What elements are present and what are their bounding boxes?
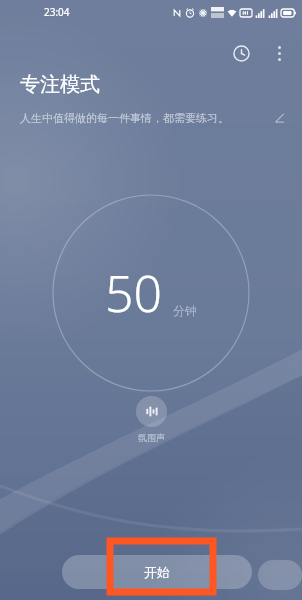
staticText: 23:04 [44, 5, 70, 19]
staticText: 50 [105, 259, 163, 327]
staticText: 专注模式 [20, 72, 100, 97]
button[interactable]: 开始 [62, 555, 252, 589]
staticText: 分钟 [173, 303, 197, 318]
button[interactable]: 50 [52, 194, 250, 392]
button[interactable]: 氛围声 [136, 396, 167, 443]
button[interactable]: History [224, 36, 258, 70]
staticText: 开始 [144, 564, 170, 580]
staticText: 人生中值得做的每一件事情，都需要练习。 [20, 111, 273, 125]
button[interactable]: More options [264, 38, 294, 68]
staticText: 氛围声 [138, 432, 165, 443]
button[interactable] [258, 560, 302, 590]
button[interactable]: 人生中值得做的每一件事情，都需要练习。 [20, 111, 286, 125]
